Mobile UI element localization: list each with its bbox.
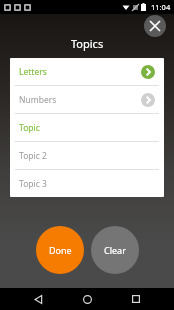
staticText: Topic 2 xyxy=(19,150,47,162)
button[interactable]: Numbers xyxy=(10,86,164,113)
staticText: Clear xyxy=(104,244,126,256)
button[interactable]: Topic 2 xyxy=(10,142,164,169)
button[interactable]: Home xyxy=(76,288,98,310)
staticText: Numbers xyxy=(19,94,57,106)
staticText: Letters xyxy=(19,66,47,78)
button[interactable]: Letters xyxy=(10,58,164,85)
staticText: Topics xyxy=(71,36,104,51)
button[interactable]: Recent apps xyxy=(125,288,147,310)
staticText: Topic xyxy=(19,122,40,134)
staticText: Done xyxy=(49,244,72,256)
staticText: 11:04 xyxy=(151,2,171,12)
button[interactable]: Done xyxy=(36,226,84,274)
button[interactable]: Topic 3 xyxy=(10,170,164,197)
button[interactable]: Clear xyxy=(91,226,139,274)
button[interactable]: Back xyxy=(27,288,49,310)
staticText: Topic 3 xyxy=(19,178,47,190)
button[interactable]: Close xyxy=(144,15,166,37)
button[interactable]: Topic xyxy=(10,114,164,141)
